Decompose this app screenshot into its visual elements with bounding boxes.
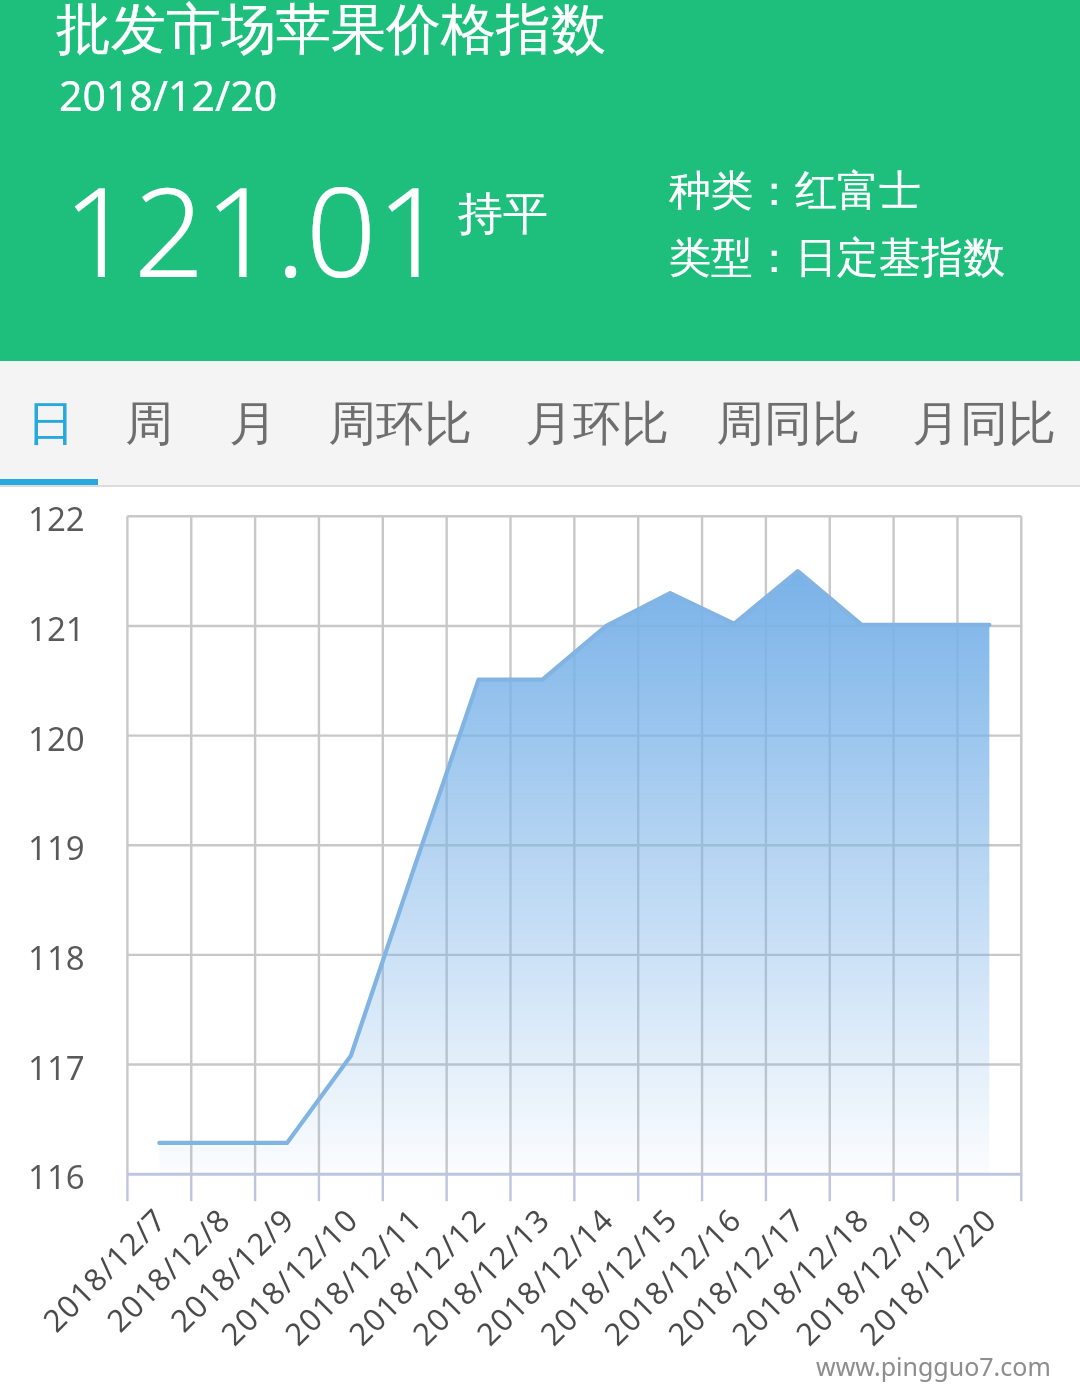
- staticText: 批发市场苹果价格指数: [56, 0, 606, 64]
- staticText: 121.01: [63, 144, 448, 313]
- staticText: 类型：日定基指数: [669, 232, 1005, 285]
- staticText: 日: [27, 394, 75, 454]
- button[interactable]: 周环比: [300, 361, 497, 487]
- button[interactable]: 周同比: [692, 361, 886, 487]
- staticText: 月同比: [912, 394, 1056, 454]
- other: 批发市场苹果价格指数折线图: [0, 0, 1080, 1391]
- staticText: 月环比: [525, 394, 669, 454]
- button[interactable]: 月同比: [886, 361, 1080, 487]
- button[interactable]: 周: [98, 361, 198, 487]
- staticText: 周: [125, 394, 173, 454]
- staticText: 持平: [458, 186, 548, 243]
- staticText: 周环比: [328, 394, 472, 454]
- staticText: 周同比: [716, 394, 860, 454]
- button[interactable]: 日: [0, 361, 98, 487]
- staticText: 2018/12/20: [59, 67, 278, 123]
- button[interactable]: 月: [198, 361, 300, 487]
- staticText: 种类：红富士: [669, 165, 921, 218]
- staticText: 月: [229, 394, 277, 454]
- button[interactable]: 月环比: [497, 361, 692, 487]
